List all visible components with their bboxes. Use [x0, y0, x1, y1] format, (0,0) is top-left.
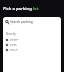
staticText: Search parking — [10, 20, 33, 24]
staticText: Garage — [10, 37, 19, 40]
staticText: 0.2 mi — [10, 39, 17, 42]
button[interactable]: Garage — [3, 37, 61, 42]
staticText: Pier 44 — [10, 47, 19, 50]
other: Search — [5, 20, 9, 24]
staticText: Pick a parking lot — [3, 6, 39, 12]
staticText: Nearby — [6, 32, 16, 36]
button[interactable]: Pier 44 — [3, 47, 61, 52]
staticText: Plaza — [10, 42, 17, 45]
button[interactable]: Plaza — [3, 42, 61, 47]
staticText: 0.5 mi — [10, 44, 17, 47]
staticText: 0.8 mi — [10, 49, 17, 52]
button[interactable]: Pick a parking lot — [3, 6, 39, 12]
button[interactable]: Search — [3, 17, 61, 27]
